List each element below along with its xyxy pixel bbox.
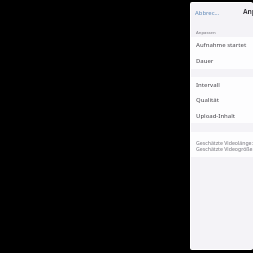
staticText: Intervall — [196, 81, 220, 89]
staticText: Anpassen — [196, 29, 216, 35]
button[interactable]: Aufnahme startet — [191, 37, 253, 53]
button[interactable]: Intervall — [191, 77, 253, 92]
button[interactable]: Upload-Inhalt — [191, 108, 253, 123]
button[interactable]: Qualität — [191, 92, 253, 108]
staticText: Upload-Inhalt — [196, 112, 236, 120]
staticText: Geschätzte Videolänge: — [196, 139, 253, 146]
staticText: Abbrec... — [195, 9, 220, 17]
staticText: Aufnahme startet — [196, 41, 247, 49]
button[interactable]: Dauer — [191, 53, 253, 69]
staticText: Dauer — [196, 57, 214, 65]
staticText: Qualität — [196, 96, 219, 104]
button[interactable]: Abbrec... — [192, 7, 223, 19]
staticText: Geschätzte Videogröße: — [196, 145, 253, 152]
staticText: Anpassen — [243, 7, 253, 16]
